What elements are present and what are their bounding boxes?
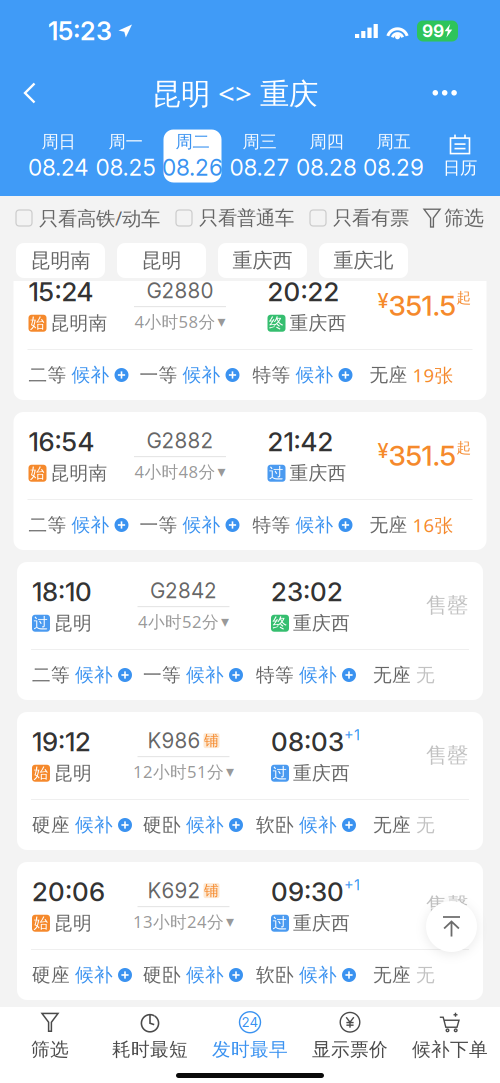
staticText: 4小时52分: [138, 610, 219, 633]
button[interactable]: 周四: [293, 123, 360, 189]
staticText: 候补: [186, 663, 224, 687]
button[interactable]: 特等: [252, 513, 352, 537]
button[interactable]: 二等: [32, 663, 132, 687]
staticText: 重庆北: [333, 248, 393, 273]
staticText: 周二: [175, 131, 209, 153]
button[interactable]: 无座: [373, 663, 435, 687]
staticText: ¥: [377, 289, 388, 313]
staticText: 周四: [309, 131, 343, 153]
staticText: 候补: [295, 513, 333, 537]
button[interactable]: 周二: [159, 123, 226, 189]
button[interactable]: Back: [11, 69, 48, 117]
button[interactable]: 特等: [256, 663, 356, 687]
button[interactable]: 软卧: [256, 813, 356, 837]
staticText: +1: [344, 876, 360, 894]
staticText: 无座: [373, 663, 411, 687]
staticText: 铺: [204, 881, 219, 900]
button[interactable]: 特等: [252, 363, 352, 387]
staticText: 候补: [299, 963, 337, 987]
staticText: 昆明 <> 重庆: [152, 73, 318, 113]
staticText: 硬卧: [143, 813, 181, 837]
staticText: 16张: [412, 512, 453, 538]
staticText: 08.29: [363, 154, 424, 181]
staticText: 23:02: [271, 576, 343, 607]
button[interactable]: 一等: [139, 513, 239, 537]
staticText: 一等: [139, 363, 177, 387]
button[interactable]: 筛选: [0, 1008, 100, 1064]
staticText: 候补: [182, 363, 220, 387]
staticText: 过: [33, 614, 48, 632]
button[interactable]: 重庆北: [319, 243, 408, 278]
button[interactable]: 硬卧: [143, 963, 243, 987]
staticText: 硬卧: [143, 963, 181, 987]
staticText: 无座: [373, 963, 411, 987]
staticText: 始: [33, 764, 48, 782]
button[interactable]: 二等: [28, 513, 128, 537]
staticText: 候补: [299, 813, 337, 837]
button[interactable]: 一等: [143, 663, 243, 687]
button[interactable]: 无座: [373, 963, 435, 987]
staticText: 重庆西: [289, 311, 346, 335]
staticText: 13小时24分: [133, 910, 224, 933]
staticText: 351.5: [388, 439, 456, 472]
button[interactable]: 周一: [92, 123, 159, 189]
staticText: 周五: [376, 131, 410, 153]
staticText: 昆明南: [50, 311, 107, 335]
button[interactable]: 只看有票: [310, 206, 409, 230]
button[interactable]: Scroll to top: [426, 901, 477, 952]
staticText: 15:23: [48, 16, 112, 46]
button[interactable]: 昆明南: [16, 243, 105, 278]
button[interactable]: 软卧: [256, 963, 356, 987]
button[interactable]: 硬座: [32, 963, 132, 987]
staticText: 无: [416, 663, 435, 687]
staticText: 昆明南: [30, 248, 90, 273]
staticText: 候补: [75, 963, 113, 987]
staticText: 无座: [369, 363, 407, 387]
button[interactable]: 只看高铁/动车: [16, 205, 160, 231]
button[interactable]: 筛选: [425, 205, 484, 231]
staticText: 二等: [28, 363, 66, 387]
staticText: 08:03: [271, 726, 344, 757]
button[interactable]: 只看普通车: [176, 206, 294, 230]
button[interactable]: More options: [422, 69, 468, 117]
staticText: 特等: [256, 663, 294, 687]
staticText: 过: [269, 464, 284, 482]
button[interactable]: 候补下单: [400, 1008, 500, 1064]
button[interactable]: 一等: [139, 363, 239, 387]
button[interactable]: 显示票价: [300, 1008, 400, 1064]
staticText: 二等: [32, 663, 70, 687]
button[interactable]: 硬卧: [143, 813, 243, 837]
staticText: 二等: [28, 513, 66, 537]
staticText: 重庆西: [289, 461, 346, 485]
staticText: 售罄: [426, 592, 468, 619]
staticText: 候补: [295, 363, 333, 387]
staticText: 日历: [443, 157, 477, 179]
staticText: 昆明: [54, 761, 92, 785]
button[interactable]: 无座: [369, 362, 453, 388]
button[interactable]: 无座: [373, 813, 435, 837]
staticText: 售罄: [426, 892, 468, 919]
button[interactable]: 昆明: [117, 243, 206, 278]
staticText: 重庆西: [232, 248, 292, 273]
staticText: 终: [269, 314, 284, 332]
button[interactable]: 耗时最短: [100, 1008, 200, 1064]
staticText: 18:10: [32, 576, 92, 607]
staticText: 08.28: [296, 154, 357, 181]
staticText: 20:22: [267, 276, 339, 307]
button[interactable]: 周日: [25, 123, 92, 189]
staticText: 始: [33, 914, 48, 932]
button[interactable]: 二等: [28, 363, 128, 387]
staticText: ▾: [217, 312, 225, 331]
staticText: 候补: [71, 363, 109, 387]
staticText: 特等: [252, 363, 290, 387]
button[interactable]: 周五: [360, 123, 427, 189]
button[interactable]: 硬座: [32, 813, 132, 837]
staticText: 始: [30, 464, 45, 482]
button[interactable]: 重庆西: [218, 243, 307, 278]
button[interactable]: 24: [200, 1008, 300, 1064]
button[interactable]: Calendar: [427, 123, 493, 189]
button[interactable]: 周三: [226, 123, 293, 189]
staticText: +1: [344, 726, 360, 744]
staticText: 重庆西: [293, 911, 350, 935]
button[interactable]: 无座: [369, 512, 453, 538]
